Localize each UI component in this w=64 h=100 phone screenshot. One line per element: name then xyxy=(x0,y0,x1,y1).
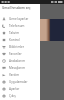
button[interactable]: Gmail hesabımı seç xyxy=(0,4,40,15)
button[interactable]: Yardım xyxy=(0,71,40,78)
staticText: Mesajlarım xyxy=(9,66,26,70)
staticText: Genel ayarlar xyxy=(9,17,29,21)
staticText: Favoriler xyxy=(9,52,22,56)
staticText: Kontrol xyxy=(9,38,20,42)
staticText: Uygulamalar xyxy=(9,80,28,84)
button[interactable]: Telefonum xyxy=(0,22,40,29)
staticText: Ayarlar xyxy=(9,87,20,91)
staticText: Takvim xyxy=(9,31,20,35)
button[interactable]: Mesajlarım xyxy=(0,64,40,71)
button[interactable]: Çıkış xyxy=(0,92,40,99)
staticText: Çıkış xyxy=(9,94,16,98)
button[interactable]: Uygulamalar xyxy=(0,78,40,85)
button[interactable]: Arabalarım xyxy=(0,57,40,64)
staticText: Telefonum xyxy=(9,24,25,28)
button[interactable]: Kontrol xyxy=(0,36,40,43)
staticText: Yardım xyxy=(9,73,20,77)
button[interactable]: Favoriler xyxy=(0,50,40,57)
button[interactable]: Ayarlar xyxy=(0,85,40,92)
staticText: Arabalarım xyxy=(9,59,26,63)
button[interactable]: Bildirimler xyxy=(0,43,40,50)
button[interactable]: Takvim xyxy=(0,29,40,36)
staticText: Bildirimler xyxy=(9,45,25,49)
button[interactable]: Genel ayarlar xyxy=(0,15,40,22)
staticText: Gmail hesabımı seç xyxy=(2,6,31,10)
